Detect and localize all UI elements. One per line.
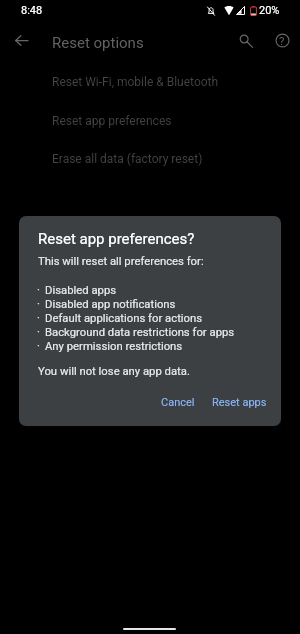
button[interactable]: Reset Wi-Fi, mobile & Bluetooth (0, 62, 300, 101)
button[interactable]: Help (270, 28, 294, 52)
staticText: · (37, 284, 40, 297)
staticText: Background data restrictions for apps (45, 326, 235, 339)
staticText: Default applications for actions (45, 312, 203, 325)
staticText: You will not lose any app data. (38, 365, 190, 378)
staticText: Reset options (52, 34, 144, 52)
button[interactable]: Reset app preferences (0, 101, 300, 140)
staticText: This will reset all preferences for: (38, 255, 204, 268)
staticText: 8:48 (21, 4, 43, 17)
staticText: Disabled apps (45, 284, 117, 297)
staticText: Reset Wi-Fi, mobile & Bluetooth (52, 75, 219, 89)
staticText: 20% (259, 4, 280, 17)
button[interactable]: Erase all data (factory reset) (0, 139, 300, 178)
staticText: Reset app preferences? (38, 230, 195, 248)
staticText: · (37, 340, 40, 353)
staticText: Reset apps (212, 396, 267, 409)
button[interactable]: Reset apps (206, 392, 273, 413)
button[interactable]: Back (9, 28, 33, 52)
staticText: · (37, 312, 40, 325)
staticText: · (37, 326, 40, 339)
staticText: Erase all data (factory reset) (52, 152, 203, 166)
staticText: Any permission restrictions (45, 340, 183, 353)
staticText: Reset app preferences (52, 114, 172, 128)
staticText: ? (279, 34, 285, 47)
staticText: Disabled app notifications (45, 298, 176, 311)
button[interactable]: Cancel (155, 392, 201, 413)
staticText: · (37, 298, 40, 311)
button[interactable]: Search (233, 28, 257, 52)
staticText: Cancel (161, 396, 195, 409)
